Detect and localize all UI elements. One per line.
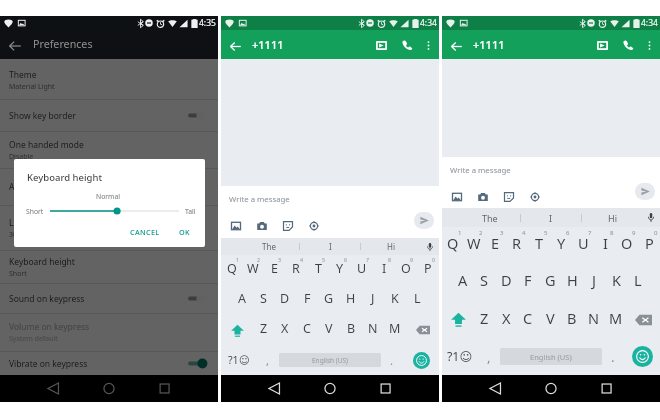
button[interactable]: S	[252, 285, 274, 315]
button[interactable]: 0	[417, 255, 439, 285]
button[interactable]: V	[539, 301, 561, 338]
button[interactable]: .	[381, 345, 403, 375]
button[interactable]: Theme	[0, 62, 218, 99]
button[interactable]: M	[605, 301, 627, 338]
button[interactable]: N	[362, 315, 384, 345]
button[interactable]: The	[238, 238, 299, 255]
button[interactable]: ?1☺	[442, 338, 478, 375]
button[interactable]: ?1☺	[221, 345, 257, 375]
button[interactable]: Z	[253, 315, 274, 345]
button[interactable]: D	[495, 264, 517, 301]
button[interactable]: Long press duration	[0, 206, 218, 250]
button[interactable]: Z	[474, 301, 495, 338]
button[interactable]: N	[583, 301, 605, 338]
button[interactable]: One handed mode	[0, 132, 218, 168]
button[interactable]: 3	[263, 255, 285, 285]
button[interactable]: Video call	[372, 36, 390, 54]
button[interactable]: I	[300, 238, 360, 255]
button[interactable]: I	[521, 208, 581, 227]
button[interactable]: OK	[175, 225, 194, 239]
button[interactable]: Emoji	[403, 345, 439, 375]
button[interactable]: A	[452, 264, 473, 301]
button[interactable]: Voice input	[421, 238, 439, 255]
button[interactable]: 1	[442, 227, 463, 264]
button[interactable]: Hi	[582, 208, 642, 227]
button[interactable]: 6	[329, 255, 351, 285]
button[interactable]: Voice input	[642, 208, 660, 227]
button[interactable]: B	[561, 301, 583, 338]
button[interactable]: 2	[242, 255, 263, 285]
button[interactable]: ,	[257, 345, 279, 375]
button[interactable]: G	[539, 264, 561, 301]
button[interactable]: A	[231, 285, 252, 315]
button[interactable]: Keyboard height	[0, 251, 218, 283]
button[interactable]: H	[340, 285, 362, 315]
button[interactable]: Backspace	[627, 301, 660, 338]
button[interactable]: X	[495, 301, 517, 338]
button[interactable]: .	[602, 338, 624, 375]
button[interactable]: 5	[528, 227, 550, 264]
button[interactable]: V	[318, 315, 340, 345]
button[interactable]: Attach image	[228, 218, 244, 234]
button[interactable]: Camera	[475, 189, 491, 205]
button[interactable]: J	[362, 285, 384, 315]
button[interactable]: Call	[619, 36, 637, 54]
button[interactable]: Auto capitalization	[0, 169, 218, 205]
button[interactable]: 7	[572, 227, 594, 264]
button[interactable]: Show key border	[0, 100, 218, 131]
button[interactable]: 4	[285, 255, 307, 285]
button[interactable]: 2	[463, 227, 484, 264]
button[interactable]: English (US)	[500, 348, 602, 365]
button[interactable]: 5	[307, 255, 329, 285]
button[interactable]: F	[517, 264, 539, 301]
button[interactable]: S	[473, 264, 495, 301]
button[interactable]: English (US)	[279, 353, 381, 367]
button[interactable]: J	[583, 264, 605, 301]
button[interactable]: 9	[616, 227, 638, 264]
button[interactable]: Attach image	[449, 189, 465, 205]
button[interactable]: Volume on keypress	[0, 314, 218, 351]
button[interactable]: The	[459, 208, 520, 227]
button[interactable]: K	[384, 285, 406, 315]
button[interactable]: X	[274, 315, 296, 345]
button[interactable]: Backspace	[406, 315, 439, 345]
button[interactable]: 7	[351, 255, 373, 285]
button[interactable]: Send	[414, 212, 434, 229]
button[interactable]: B	[340, 315, 362, 345]
button[interactable]: Video call	[593, 36, 611, 54]
button[interactable]: Emoji	[624, 338, 660, 375]
button[interactable]: Hi	[361, 238, 421, 255]
button[interactable]: ,	[478, 338, 500, 375]
button[interactable]: Sound on keypress	[0, 284, 218, 313]
button[interactable]: K	[605, 264, 627, 301]
button[interactable]: M	[384, 315, 406, 345]
button[interactable]: C	[296, 315, 318, 345]
button[interactable]: Shift	[221, 315, 253, 345]
button[interactable]: F	[296, 285, 318, 315]
button[interactable]: G	[318, 285, 340, 315]
button[interactable]: 3	[484, 227, 506, 264]
button[interactable]: Back	[227, 37, 243, 53]
button[interactable]: Camera	[254, 218, 270, 234]
button[interactable]: 8	[373, 255, 395, 285]
button[interactable]: 9	[395, 255, 417, 285]
button[interactable]: More options	[640, 36, 658, 54]
button[interactable]: Shift	[442, 301, 474, 338]
button[interactable]: 6	[550, 227, 572, 264]
button[interactable]: Vibrate on keypress	[0, 352, 218, 375]
button[interactable]: L	[627, 264, 649, 301]
button[interactable]: 1	[221, 255, 242, 285]
button[interactable]: Back	[448, 37, 464, 53]
button[interactable]: Send	[635, 183, 655, 200]
button[interactable]: More options	[419, 36, 437, 54]
button[interactable]: D	[274, 285, 296, 315]
button[interactable]: 4	[506, 227, 528, 264]
button[interactable]: 0	[638, 227, 660, 264]
button[interactable]: CANCEL	[126, 225, 164, 239]
button[interactable]: C	[517, 301, 539, 338]
button[interactable]: Back	[7, 37, 23, 53]
button[interactable]: H	[561, 264, 583, 301]
button[interactable]: Location	[527, 189, 543, 205]
button[interactable]: Stickers	[280, 218, 296, 234]
button[interactable]: 8	[594, 227, 616, 264]
